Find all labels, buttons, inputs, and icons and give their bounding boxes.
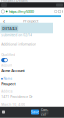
staticText: Save [31,110,39,114]
button[interactable]: Menu [2,110,5,113]
staticText: submitted on 02/14 [1,33,32,37]
staticText: Prospect [1,81,16,86]
staticText: Prospect [23,18,38,24]
staticText: Prospect Details [1,0,28,3]
staticText: March 10, 4:00 [1,102,25,107]
staticText: Qualified [1,52,15,57]
staticText: https://my5000 [9,9,34,14]
staticText: Address [1,89,12,93]
staticText: 1471 Providence Dr [1,95,32,99]
staticText: ‹ [3,16,5,25]
button[interactable]: Save [31,109,39,114]
button[interactable]: Qualified toggle [1,58,8,62]
staticText: Name [3,77,12,81]
staticText: Acme Account [1,68,25,73]
staticText: Additional information [1,42,36,46]
button[interactable]: Cancel [40,109,48,114]
staticText: DETAILS [2,26,17,31]
button[interactable]: Back [1,17,7,24]
staticText: Cancel [41,107,48,117]
staticText: Account [1,63,12,67]
button[interactable]: DETAILS [1,26,18,31]
